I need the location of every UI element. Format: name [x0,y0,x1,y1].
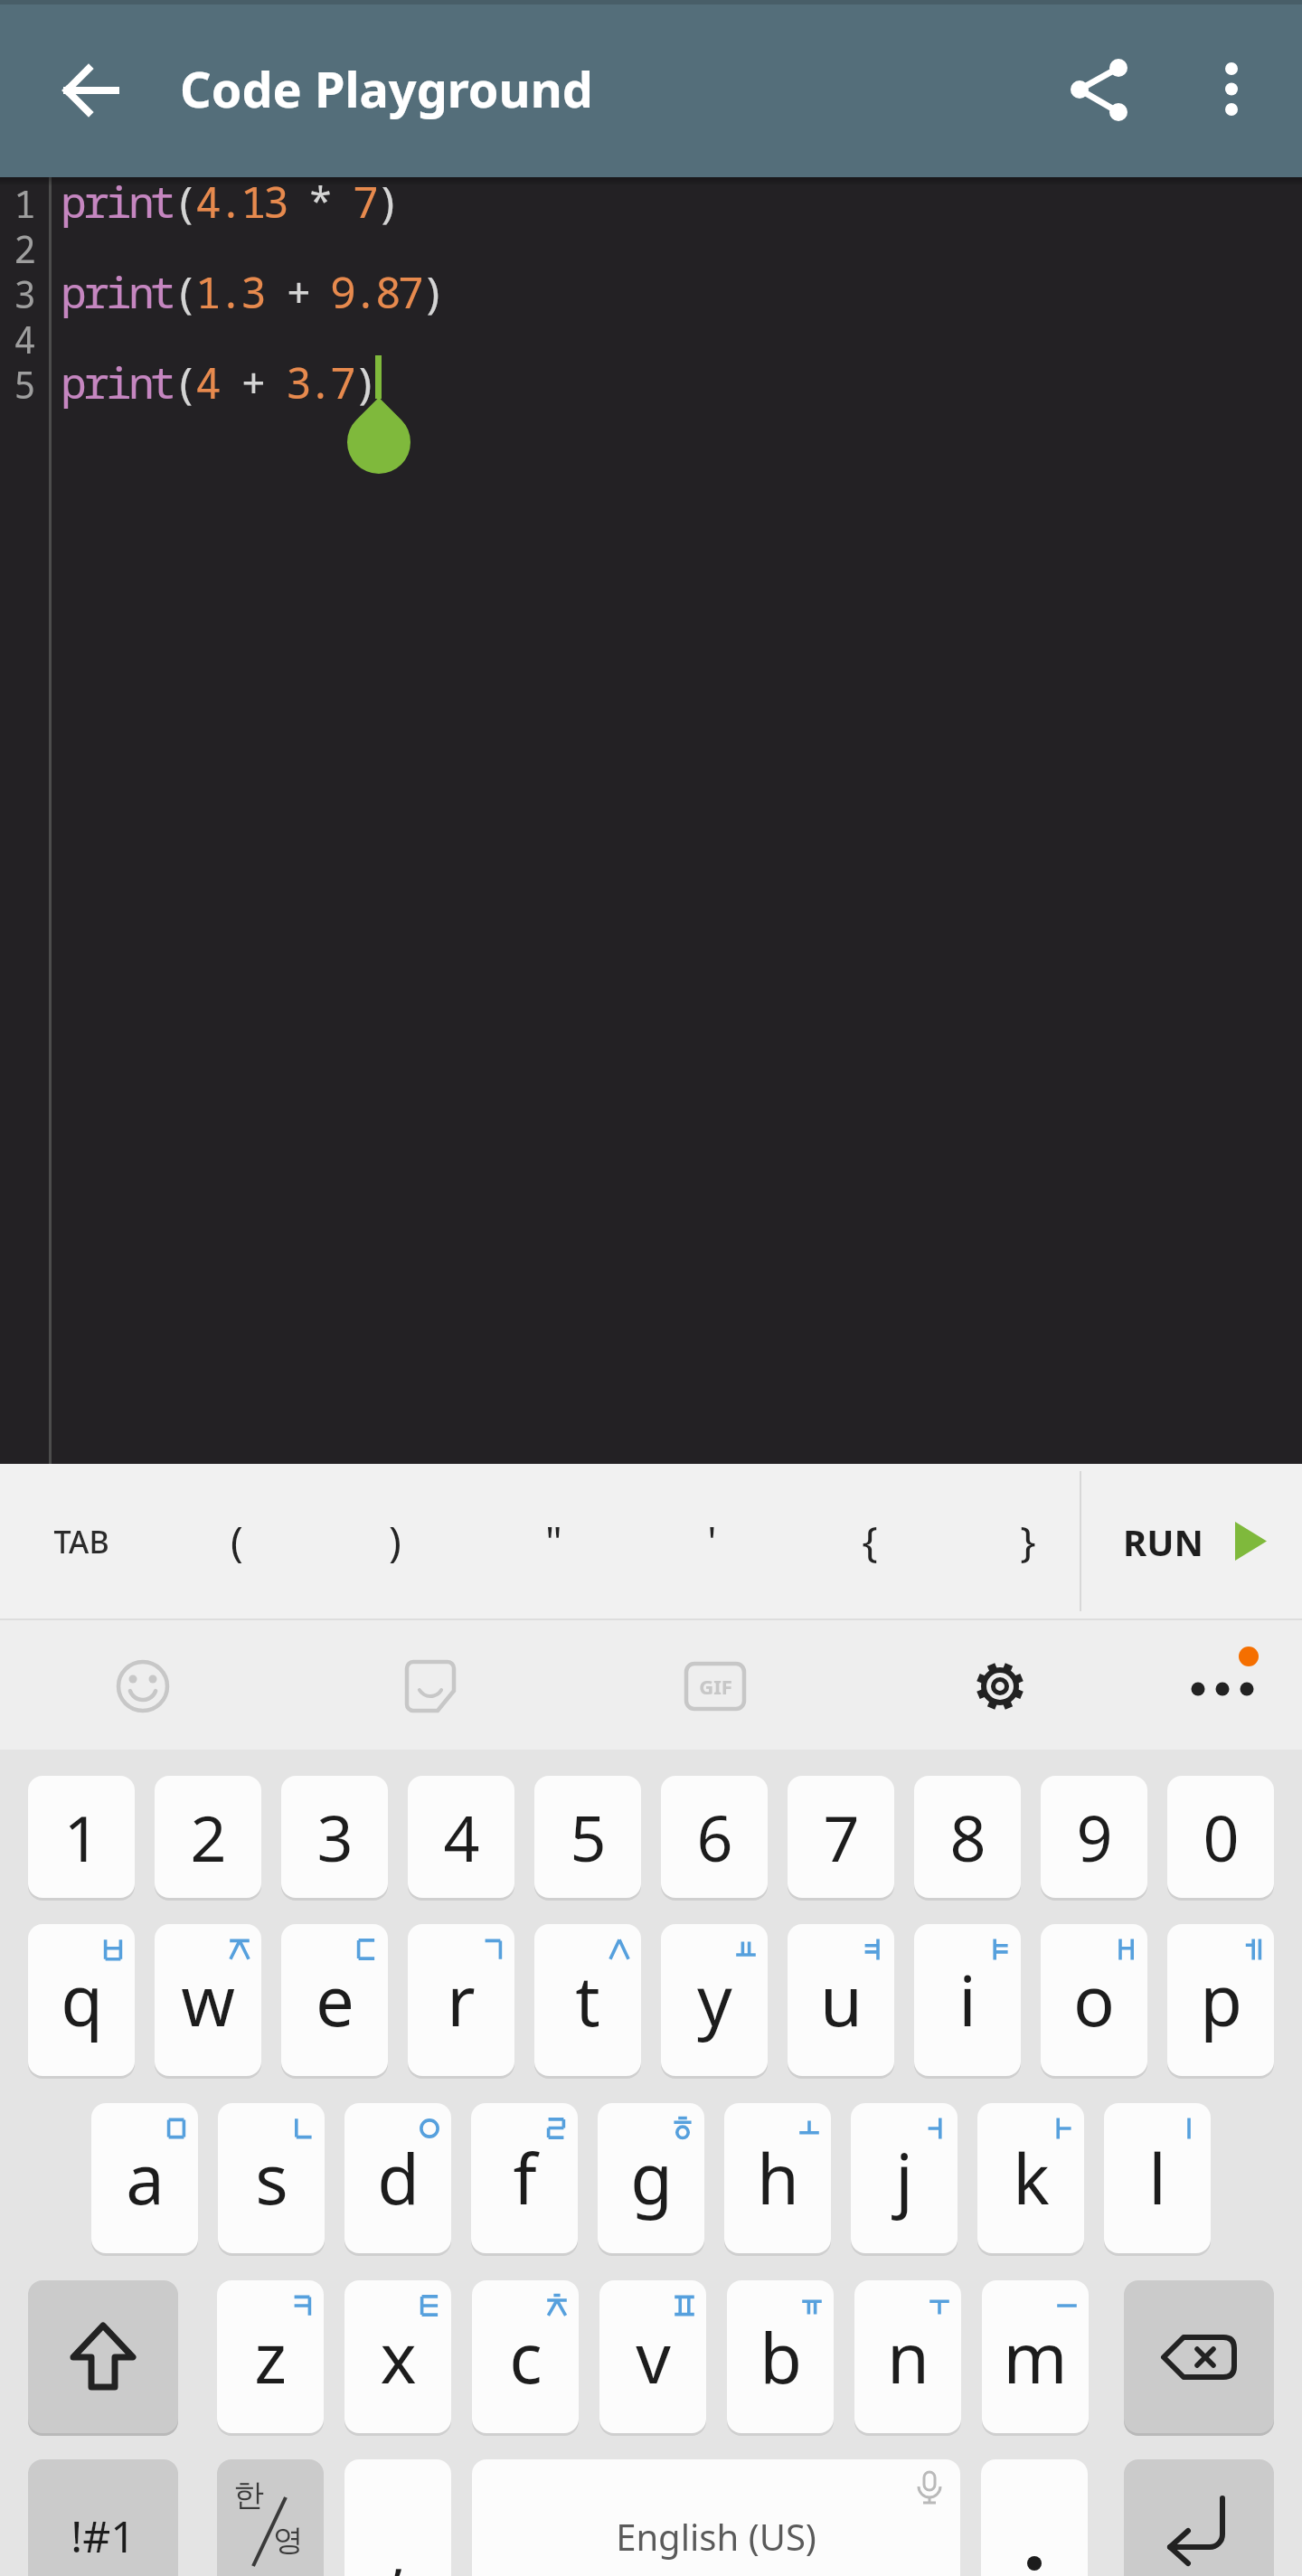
staticText: 7 [353,172,379,231]
staticText: { [862,1513,878,1570]
staticText: . [218,172,244,231]
button[interactable]: w [155,1924,261,2076]
button[interactable]: ' [666,1464,757,1618]
button[interactable]: f [471,2103,578,2253]
button[interactable] [955,1638,1045,1729]
staticText: ) [375,172,401,231]
staticText: k [1013,2131,1050,2225]
staticText: o [1073,1953,1115,2047]
staticText: b [759,2310,802,2404]
staticText: 5 [570,1794,607,1880]
button[interactable]: v [599,2280,706,2433]
button[interactable]: g [598,2103,704,2253]
button[interactable] [54,54,127,127]
staticText: 3 [241,262,267,321]
staticText: RUN [1123,1517,1203,1566]
button[interactable]: 7 [788,1776,894,1898]
button[interactable]: 9 [1041,1776,1147,1898]
staticText: r [83,262,109,321]
button[interactable]: GIF [670,1638,760,1729]
button[interactable] [981,2459,1088,2576]
staticText: ( [173,172,199,231]
button[interactable]: , [344,2459,451,2576]
button[interactable]: ( [192,1464,282,1618]
staticText: i [106,353,132,411]
button[interactable] [1186,43,1277,134]
button[interactable]: 6 [661,1776,768,1898]
staticText: 5 [14,359,36,404]
staticText: 2 [190,1794,227,1880]
staticText: u [820,1953,863,2047]
button[interactable]: 4 [408,1776,514,1898]
button[interactable]: m [982,2280,1089,2433]
button[interactable]: t [534,1924,641,2076]
button[interactable]: 3 [281,1776,388,1898]
button[interactable] [1124,2280,1274,2433]
button[interactable] [28,2280,178,2433]
button[interactable]: k [977,2103,1084,2253]
staticText: n [128,353,155,411]
staticText: ( [173,262,199,321]
button[interactable]: x [344,2280,451,2433]
staticText: n [887,2310,929,2404]
button[interactable]: q [28,1924,135,2076]
button[interactable]: s [218,2103,325,2253]
staticText: r [83,172,109,231]
staticText: 4 [443,1794,480,1880]
button[interactable]: d [344,2103,451,2253]
staticText: m [1003,2310,1068,2404]
button[interactable] [98,1638,188,1729]
button[interactable]: l [1104,2103,1211,2253]
button[interactable]: z [217,2280,324,2433]
staticText: 영 [273,2521,304,2560]
staticText: TAB [53,1521,109,1562]
staticText: 3 [316,1794,354,1880]
staticText: ( [231,1513,243,1570]
button[interactable]: 0 [1167,1776,1274,1898]
button[interactable]: !#1 [28,2459,178,2576]
button[interactable]: b [727,2280,834,2433]
staticText: 7 [398,262,424,321]
button[interactable]: 5 [534,1776,641,1898]
button[interactable]: TAB [36,1464,127,1618]
button[interactable]: " [508,1464,599,1618]
button[interactable] [385,1638,476,1729]
button[interactable]: { [825,1464,915,1618]
button[interactable]: j [851,2103,958,2253]
button[interactable]: r [408,1924,514,2076]
staticText: q [61,1953,103,2047]
button[interactable]: 8 [914,1776,1021,1898]
button[interactable]: a [91,2103,198,2253]
staticText: . [353,262,379,321]
staticText: . [307,353,334,411]
button[interactable]: y [661,1924,768,2076]
button[interactable]: n [854,2280,961,2433]
button[interactable]: ) [350,1464,440,1618]
staticText: p [61,353,87,411]
button[interactable]: u [788,1924,894,2076]
button[interactable] [1124,2459,1274,2576]
button[interactable]: e [281,1924,388,2076]
button[interactable]: h [724,2103,831,2253]
staticText: GIF [699,1673,732,1700]
staticText: Code Playground [180,55,593,122]
staticText: t [575,1953,600,2047]
button[interactable]: RUN [1107,1464,1302,1618]
button[interactable]: i [914,1924,1021,2076]
staticText: l [1148,2131,1166,2225]
button[interactable]: English (US) [472,2459,960,2576]
button[interactable] [1177,1638,1277,1738]
button[interactable]: o [1041,1924,1147,2076]
button[interactable]: 2 [155,1776,261,1898]
button[interactable]: } [983,1464,1073,1618]
button[interactable]: 1 [28,1776,135,1898]
staticText: } [1020,1513,1036,1570]
staticText: r [447,1953,476,2047]
staticText: English (US) [616,2512,816,2561]
button[interactable]: p [1167,1924,1274,2076]
staticText: i [958,1953,976,2047]
button[interactable]: c [472,2280,579,2433]
button[interactable] [1054,45,1145,136]
button[interactable]: 한 [217,2459,324,2576]
staticText: n [128,172,155,231]
